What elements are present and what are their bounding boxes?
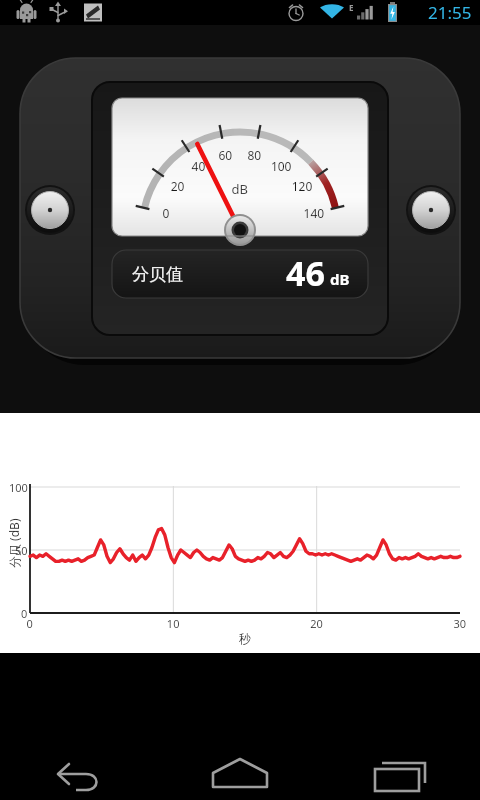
button[interactable]: Back bbox=[0, 740, 160, 800]
button[interactable]: Sound level meter bbox=[0, 25, 480, 413]
button[interactable]: Recent apps bbox=[320, 740, 480, 800]
button[interactable]: Home bbox=[160, 740, 320, 800]
button[interactable]: Decibel history chart bbox=[0, 413, 480, 653]
